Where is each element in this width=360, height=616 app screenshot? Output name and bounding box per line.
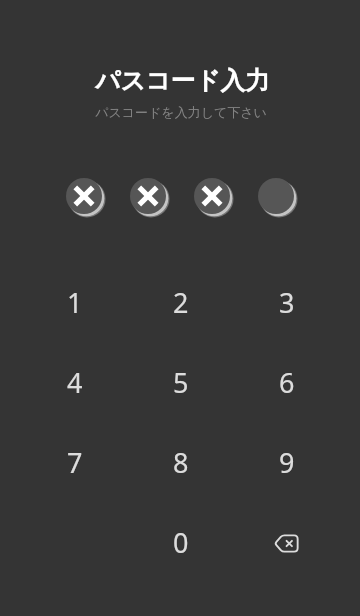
staticText: 9 [279,444,295,481]
staticText: 2 [173,284,189,321]
button[interactable]: 2 [128,262,234,342]
staticText: 7 [67,444,83,481]
button[interactable]: 0 [128,502,234,582]
button[interactable]: 8 [128,422,234,502]
button[interactable]: 7 [22,422,128,502]
staticText: 1 [67,284,83,321]
staticText: 6 [279,364,295,401]
button[interactable]: 1 [22,262,128,342]
staticText: パスコードを入力して下さい [95,104,267,120]
button[interactable]: 3 [234,262,340,342]
staticText: 0 [173,524,189,561]
button[interactable]: 5 [128,342,234,422]
staticText: パスコード入力 [95,65,270,96]
staticText: 4 [67,364,83,401]
staticText: 3 [279,284,295,321]
staticText: 5 [173,364,189,401]
staticText: 8 [173,444,189,481]
button[interactable]: 4 [22,342,128,422]
button[interactable]: Backspace [234,502,340,582]
button[interactable]: 6 [234,342,340,422]
button[interactable]: 9 [234,422,340,502]
